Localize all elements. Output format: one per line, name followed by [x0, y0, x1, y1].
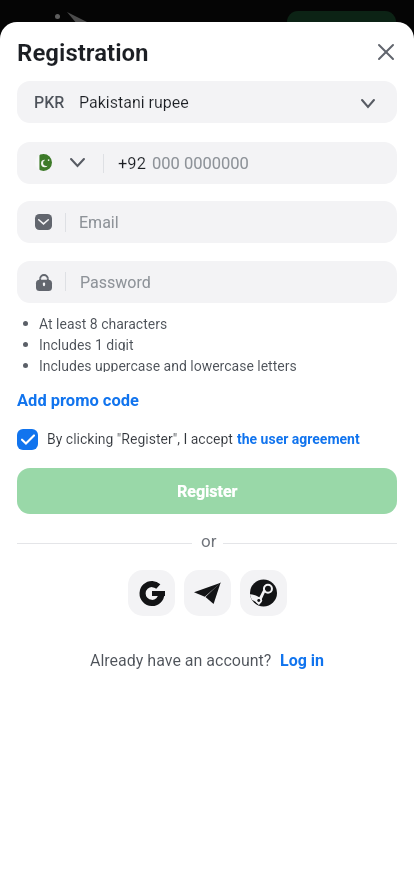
button[interactable]: Sign up with Telegram: [184, 570, 231, 616]
button[interactable]: [17, 201, 397, 243]
staticText: Log in: [280, 651, 325, 670]
button[interactable]: Sign up with Steam: [240, 570, 287, 616]
button[interactable]: [17, 81, 397, 123]
staticText: Includes 1 digit: [39, 337, 134, 351]
staticText: At least 8 characters: [39, 316, 168, 330]
staticText: 000 0000000: [152, 154, 249, 173]
button[interactable]: Close: [366, 32, 406, 72]
staticText: +92: [118, 154, 146, 173]
staticText: Pakistani rupee: [79, 93, 189, 112]
button[interactable]: Add promo code: [17, 391, 139, 410]
staticText: PKR: [34, 93, 65, 112]
staticText: By clicking "Register", I accept: [47, 431, 237, 447]
staticText: Includes uppercase and lowercase letters: [39, 358, 297, 372]
staticText: the user agreement: [237, 431, 360, 447]
staticText: Register: [177, 482, 238, 501]
staticText: Password: [80, 273, 151, 292]
button[interactable]: [17, 142, 397, 184]
staticText: or: [201, 531, 217, 551]
button[interactable]: Log in: [280, 651, 325, 670]
staticText: Email: [79, 213, 119, 232]
button[interactable]: By clicking "Register", I accept: [0, 427, 414, 451]
button[interactable]: Register: [17, 468, 397, 514]
staticText: Registration: [17, 39, 149, 67]
staticText: Already have an account?: [90, 651, 272, 670]
button[interactable]: [17, 261, 397, 303]
button[interactable]: Sign up with Google: [128, 570, 175, 616]
staticText: Add promo code: [17, 391, 139, 410]
